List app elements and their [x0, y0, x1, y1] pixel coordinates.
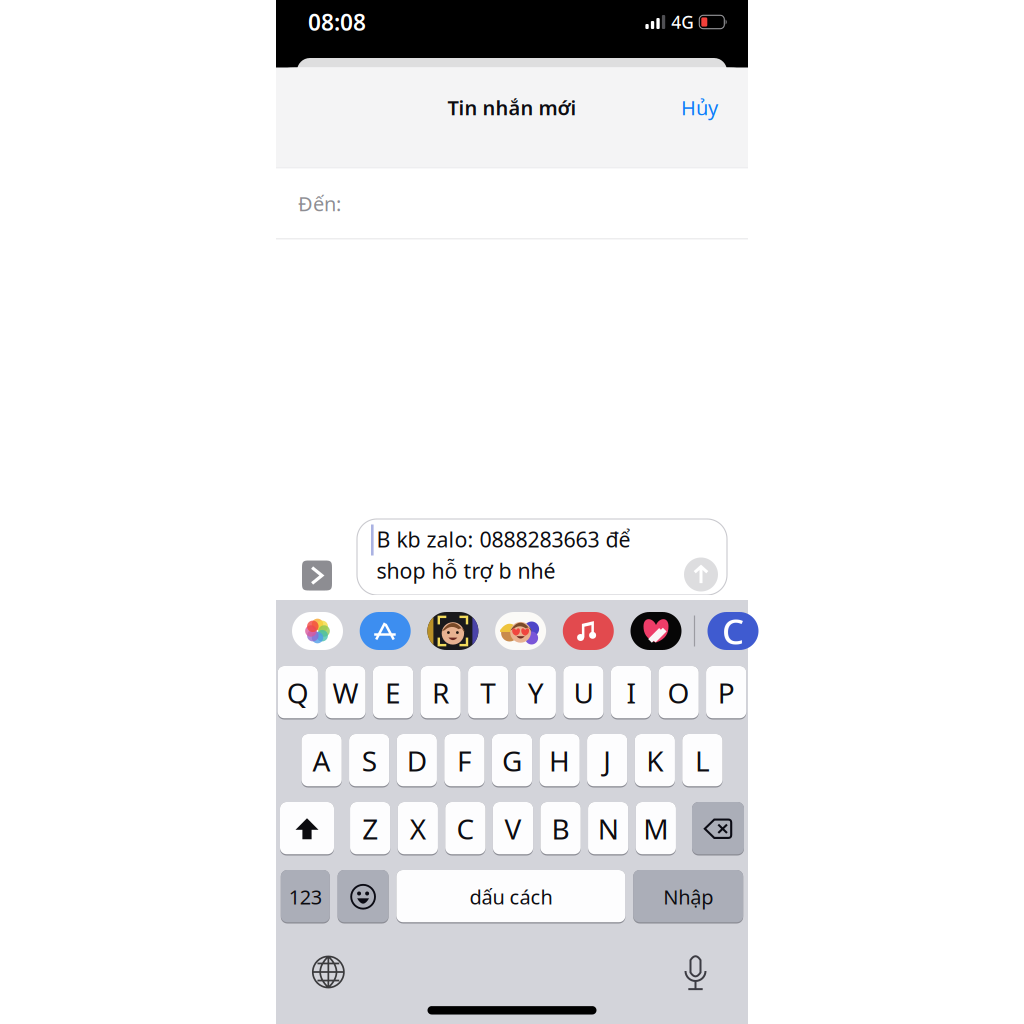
staticText: B kb zalo: 0888283663 để	[377, 525, 631, 553]
staticText: T	[480, 674, 496, 711]
staticText: Hủy	[681, 94, 718, 121]
button[interactable]: T	[468, 666, 508, 719]
staticText: 08:08	[308, 7, 366, 37]
button[interactable]: Delete	[692, 802, 744, 855]
button[interactable]: Nhập	[633, 870, 743, 923]
staticText: Tin nhắn mới	[447, 94, 576, 121]
staticText: K	[646, 742, 663, 779]
staticText: G	[502, 742, 522, 779]
button[interactable]: S	[349, 734, 389, 787]
staticText: 123	[289, 883, 322, 910]
staticText: Đến:	[298, 190, 341, 217]
staticText: M	[643, 810, 668, 847]
button[interactable]: K	[635, 734, 675, 787]
button[interactable]: I	[611, 666, 651, 719]
staticText: R	[432, 674, 449, 711]
staticText: P	[718, 674, 735, 711]
staticText: C	[456, 810, 474, 847]
staticText: D	[407, 742, 427, 779]
button[interactable]: R	[420, 666, 461, 719]
staticText: N	[598, 810, 619, 847]
button[interactable]: D	[397, 734, 437, 787]
button[interactable]: Q	[278, 666, 318, 719]
staticText: Z	[362, 810, 378, 847]
button[interactable]: O	[658, 666, 699, 719]
button[interactable]: J	[587, 734, 627, 787]
staticText: L	[695, 742, 710, 779]
staticText: B	[552, 810, 570, 847]
button[interactable]: A	[301, 734, 342, 787]
staticText: dấu cách	[469, 883, 552, 910]
staticText: J	[603, 742, 611, 779]
button[interactable]: dấu cách	[396, 870, 625, 923]
staticText: V	[504, 810, 521, 847]
button[interactable]: G	[492, 734, 532, 787]
button[interactable]: Z	[350, 802, 390, 855]
staticText: A	[313, 742, 331, 779]
button[interactable]: M	[636, 802, 676, 855]
button[interactable]: N	[588, 802, 628, 855]
staticText: O	[668, 674, 690, 711]
staticText: Nhập	[663, 883, 713, 910]
staticText: 4G	[671, 10, 694, 33]
button[interactable]: B	[540, 802, 581, 855]
button[interactable]: X	[398, 802, 438, 855]
button[interactable]: Hủy	[665, 86, 718, 128]
button[interactable]: Y	[516, 666, 556, 719]
button[interactable]: C	[445, 802, 485, 855]
staticText: S	[362, 742, 377, 779]
staticText: H	[549, 742, 570, 779]
staticText: X	[410, 810, 426, 847]
staticText: W	[332, 674, 358, 711]
button[interactable]: E	[373, 666, 413, 719]
button[interactable]: Emoji	[338, 870, 389, 923]
staticText: E	[385, 674, 401, 711]
button[interactable]: Dictate	[683, 953, 707, 990]
staticText: Y	[528, 674, 544, 711]
button[interactable]: L	[682, 734, 722, 787]
staticText: F	[457, 742, 472, 779]
button[interactable]: U	[563, 666, 603, 719]
staticText: I	[626, 674, 635, 711]
button[interactable]: W	[325, 666, 365, 719]
button[interactable]: More apps	[302, 514, 332, 599]
button[interactable]: Change keyboard	[312, 955, 345, 989]
staticText: U	[573, 674, 593, 711]
button[interactable]: Send	[684, 515, 718, 598]
button[interactable]: V	[493, 802, 533, 855]
staticText: shop hỗ trợ b nhé	[377, 556, 556, 585]
staticText: C	[722, 608, 744, 654]
button[interactable]: F	[444, 734, 484, 787]
button[interactable]: 123	[281, 870, 330, 923]
staticText: Q	[287, 674, 309, 711]
button[interactable]: P	[706, 666, 746, 719]
button[interactable]: Shift	[280, 802, 334, 855]
button[interactable]: H	[539, 734, 580, 787]
